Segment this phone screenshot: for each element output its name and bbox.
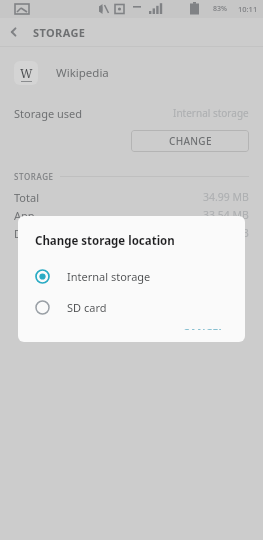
button[interactable]: Storage used	[0, 101, 263, 125]
button[interactable]: App	[0, 206, 263, 224]
staticText: 33.54 MB	[203, 208, 249, 222]
staticText: SD card	[67, 300, 107, 315]
button[interactable]: CANCEL	[177, 323, 231, 333]
staticText: CHANGE	[169, 134, 212, 148]
button[interactable]: SD card	[18, 292, 245, 323]
button[interactable]: Internal storage	[18, 261, 245, 292]
button[interactable]: Navigate up	[0, 18, 28, 46]
staticText: CANCEL	[183, 326, 225, 330]
staticText: App	[14, 208, 35, 223]
staticText: 1.45 MB	[209, 226, 249, 240]
staticText: STORAGE	[14, 171, 54, 182]
staticText: Storage used	[14, 106, 83, 121]
staticText: STORAGE	[33, 25, 86, 40]
button[interactable]: CHANGE	[131, 130, 249, 152]
staticText: Internal storage	[173, 106, 249, 120]
staticText: 34.99 MB	[203, 190, 249, 204]
staticText: Wikipedia	[56, 65, 109, 81]
button[interactable]: Total	[0, 188, 263, 206]
staticText: 83%	[213, 4, 227, 14]
staticText: Total	[14, 190, 39, 205]
staticText: W	[20, 65, 33, 81]
button[interactable]: W	[0, 55, 263, 91]
button[interactable]: Data	[0, 224, 263, 242]
staticText: Data	[14, 226, 39, 241]
staticText: 10:11	[238, 4, 258, 14]
staticText: Change storage location	[35, 233, 175, 249]
staticText: Internal storage	[67, 269, 151, 284]
